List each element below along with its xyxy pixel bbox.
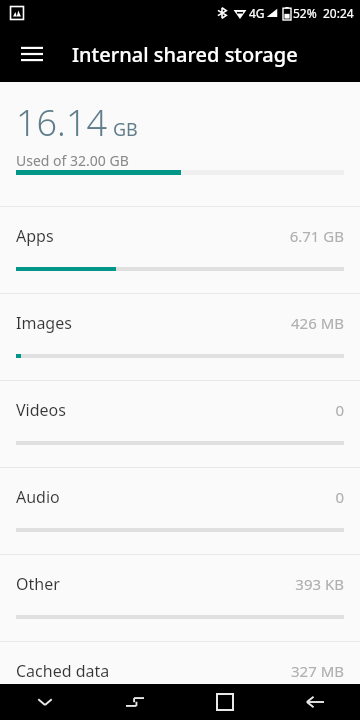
button[interactable]: Videos	[0, 381, 360, 468]
staticText: Used of 32.00 GB	[16, 151, 129, 170]
staticText: GB	[113, 117, 138, 142]
staticText: 0	[335, 487, 344, 507]
button[interactable]: Back	[270, 684, 360, 720]
staticText: Other	[16, 573, 60, 595]
staticText: Videos	[16, 399, 66, 421]
button[interactable]: Cached data	[0, 642, 360, 686]
button[interactable]: Apps	[0, 207, 360, 294]
button[interactable]: Collapse	[0, 684, 90, 720]
staticText: 327 MB	[291, 661, 344, 681]
staticText: 20:24	[323, 5, 354, 21]
staticText: Audio	[16, 486, 60, 508]
staticText: 16.14	[16, 98, 108, 147]
staticText: 426 MB	[291, 313, 344, 333]
button[interactable]: Switch input method	[90, 684, 180, 720]
staticText: 393 KB	[295, 574, 344, 594]
staticText: Cached data	[16, 660, 110, 682]
button[interactable]: Other	[0, 555, 360, 642]
staticText: 52%	[293, 5, 317, 21]
button[interactable]: Audio	[0, 468, 360, 555]
staticText: Apps	[16, 225, 54, 247]
staticText: 6.71 GB	[289, 226, 344, 246]
button[interactable]: Recent apps	[180, 684, 270, 720]
staticText: Internal shared storage	[72, 41, 298, 68]
staticText: 4G	[249, 5, 265, 21]
staticText: Images	[16, 312, 72, 334]
button[interactable]: Images	[0, 294, 360, 381]
staticText: 0	[335, 400, 344, 420]
button[interactable]: Open navigation drawer	[8, 30, 56, 78]
